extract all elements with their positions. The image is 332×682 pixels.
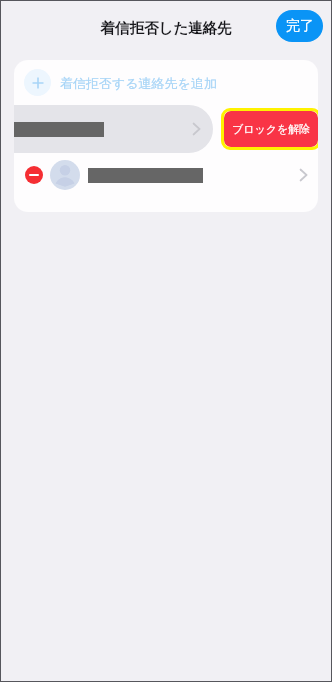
staticText: 完了 bbox=[286, 17, 314, 35]
button[interactable]: Remove bbox=[14, 153, 318, 197]
staticText: 着信拒否した連絡先 bbox=[100, 19, 232, 37]
staticText: 着信拒否する連絡先を追加 bbox=[60, 75, 217, 91]
button[interactable] bbox=[14, 105, 213, 153]
button[interactable]: 着信拒否する連絡先を追加 bbox=[14, 60, 318, 105]
other: Remove bbox=[25, 166, 43, 184]
staticText: ブロックを解除 bbox=[232, 122, 311, 136]
button[interactable]: ブロックを解除 bbox=[224, 111, 318, 147]
button[interactable]: 完了 bbox=[276, 10, 323, 42]
